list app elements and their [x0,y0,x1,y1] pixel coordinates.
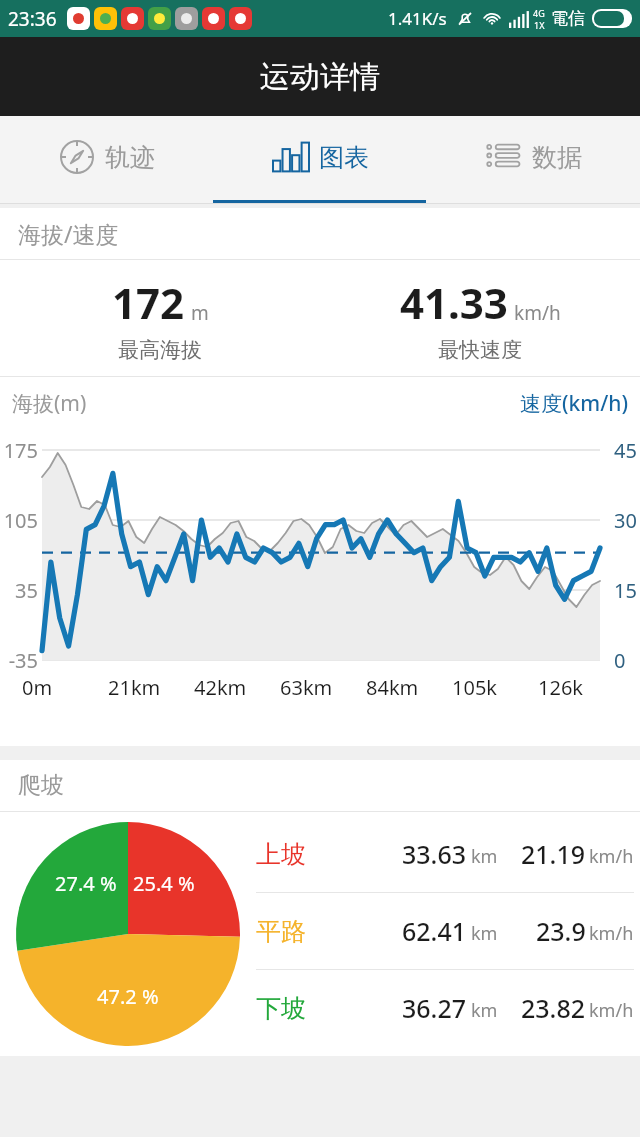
staticText: km/h [589,998,634,1023]
staticText: km [471,998,498,1023]
staticText: -35 [0,647,38,674]
staticText: 23.9 [536,914,586,948]
staticText: 海拔/速度 [18,218,119,249]
staticText: 41.33 [400,274,508,331]
staticText: 轨迹 [105,142,155,173]
button[interactable]: 上坡 [256,816,634,892]
staticText: 33.63 [402,837,467,871]
staticText: 42km [194,674,254,701]
staticText: 47.2 % [97,983,159,1010]
staticText: 0 [614,647,640,674]
staticText: 63km [280,674,340,701]
staticText: 35 [0,577,38,604]
staticText: km [471,844,498,869]
button[interactable]: 数据 [427,116,640,204]
staticText: 0m [22,674,82,701]
staticText: 上坡 [256,839,340,870]
staticText: 62.41 [402,914,467,948]
staticText: 172 [112,274,185,331]
staticText: km/h [514,300,561,326]
staticText: 1X [534,19,545,31]
staticText: 36.27 [402,991,467,1025]
staticText: 最高海拔 [118,337,202,363]
staticText: km [471,921,498,946]
staticText: 最快速度 [438,337,522,363]
button[interactable]: 轨迹 [0,116,214,204]
staticText: 速度(km/h) [520,389,628,418]
staticText: 21.19 [521,837,586,871]
staticText: 爬坡 [18,771,64,800]
staticText: 1.41K/s [388,7,447,30]
staticText: 23.82 [521,991,586,1025]
other: 轨迹 [59,139,95,175]
staticText: 電信 [551,8,585,29]
button[interactable]: 平路 [256,893,634,969]
staticText: 30 [614,507,640,534]
staticText: 图表 [319,142,369,173]
other: 数据 [486,139,522,175]
button[interactable]: 下坡 [256,970,634,1046]
staticText: 175 [0,437,38,464]
staticText: 126km [538,674,598,708]
staticText: 平路 [256,916,340,947]
staticText: 海拔(m) [12,389,87,418]
staticText: 23:36 [8,6,57,32]
staticText: 105 [0,507,38,534]
staticText: km/h [589,844,634,869]
staticText: 21km [108,674,168,701]
staticText: 84km [366,674,426,701]
button[interactable]: 图表 [214,116,427,204]
staticText: km/h [589,921,634,946]
staticText: m [191,300,209,326]
staticText: 25.4 % [133,870,195,897]
staticText: 下坡 [256,993,340,1024]
other: 图表 [273,139,309,175]
staticText: 45 [614,437,640,464]
staticText: 4G [533,7,545,19]
staticText: 数据 [532,142,582,173]
staticText: 105km [452,674,512,708]
staticText: 15 [614,577,640,604]
staticText: 运动详情 [260,58,380,96]
staticText: 27.4 % [55,870,117,897]
